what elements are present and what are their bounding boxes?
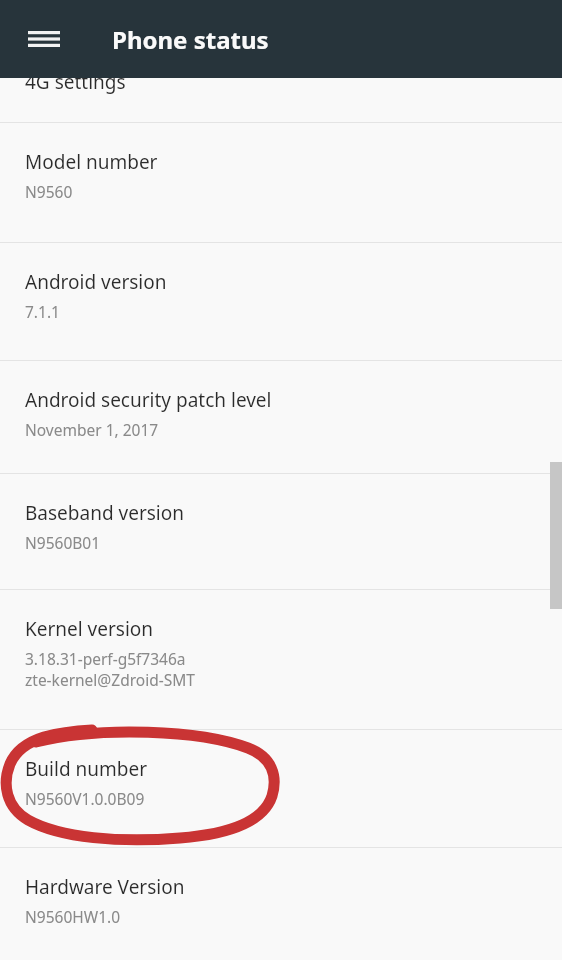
staticText: Phone status [112,23,269,56]
button[interactable]: Model number [0,123,562,242]
staticText: N9560 [25,181,73,202]
staticText: Kernel version [25,616,154,642]
staticText: N9560B01 [25,532,101,553]
staticText: Model number [25,149,158,175]
staticText: Build number [25,756,148,782]
staticText: 7.1.1 [25,301,60,322]
staticText: 3.18.31-perf-g5f7346a [25,648,186,669]
button[interactable]: Open navigation menu [16,11,72,67]
staticText: zte-kernel@Zdroid-SMT [25,669,195,690]
staticText: Android version [25,269,167,295]
button[interactable]: 4G settings [0,78,562,122]
staticText: Baseband version [25,500,184,526]
button[interactable]: Baseband version [0,474,562,589]
staticText: Hardware Version [25,874,185,900]
button[interactable]: Build number [0,730,562,847]
button[interactable]: Android security patch level [0,361,562,473]
button[interactable]: Hardware Version [0,848,562,960]
button[interactable]: Kernel version [0,590,562,729]
button[interactable]: Android version [0,243,562,360]
staticText: N9560HW1.0 [25,906,121,927]
staticText: November 1, 2017 [25,419,159,440]
staticText: N9560V1.0.0B09 [25,788,145,809]
staticText: Android security patch level [25,387,272,413]
staticText: 4G settings [25,78,126,95]
